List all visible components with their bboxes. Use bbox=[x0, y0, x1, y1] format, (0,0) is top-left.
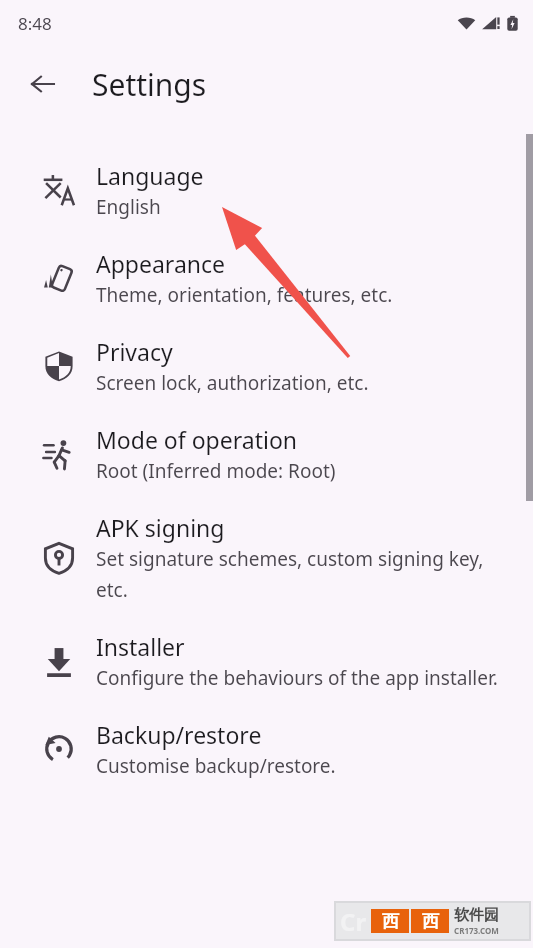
staticText: Backup/restore bbox=[96, 719, 262, 750]
staticText: Cr bbox=[340, 905, 367, 938]
button[interactable]: Mode of operation bbox=[0, 410, 533, 498]
staticText: Screen lock, authorization, etc. bbox=[96, 370, 369, 396]
button[interactable]: Installer bbox=[0, 617, 533, 705]
staticText: English bbox=[96, 194, 161, 220]
staticText: Root (Inferred mode: Root) bbox=[96, 458, 336, 484]
staticText: 8:48 bbox=[18, 12, 52, 35]
staticText: 西 bbox=[382, 911, 399, 932]
staticText: Privacy bbox=[96, 336, 173, 367]
button[interactable]: Back bbox=[19, 60, 67, 108]
staticText: Installer bbox=[96, 631, 185, 662]
button[interactable]: Appearance bbox=[0, 234, 533, 322]
staticText: Theme, orientation, features, etc. bbox=[96, 282, 393, 308]
button[interactable]: APK signing bbox=[0, 498, 533, 617]
staticText: Set signature schemes, custom signing ke… bbox=[96, 546, 509, 603]
button[interactable]: Privacy bbox=[0, 322, 533, 410]
staticText: Configure the behaviours of the app inst… bbox=[96, 665, 498, 691]
staticText: APK signing bbox=[96, 512, 225, 543]
staticText: CR173.COM bbox=[454, 925, 499, 936]
button[interactable]: Language bbox=[0, 146, 533, 234]
button[interactable]: Backup/restore bbox=[0, 705, 533, 793]
staticText: Language bbox=[96, 160, 204, 191]
staticText: Customise backup/restore. bbox=[96, 753, 336, 779]
staticText: Appearance bbox=[96, 248, 226, 279]
staticText: 软件园 bbox=[454, 906, 499, 925]
staticText: 西 bbox=[422, 911, 439, 932]
staticText: Settings bbox=[92, 64, 207, 105]
staticText: Mode of operation bbox=[96, 424, 298, 455]
